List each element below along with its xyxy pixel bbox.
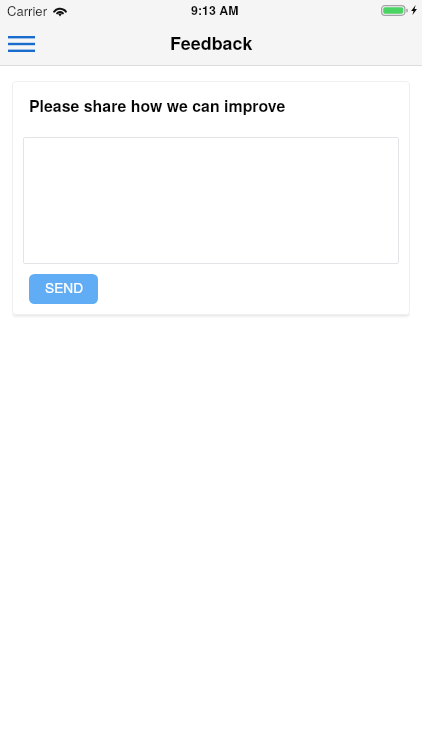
- staticText: 9:13 AM: [191, 1, 239, 19]
- button[interactable]: Menu: [0, 26, 43, 62]
- staticText: Carrier: [7, 1, 48, 20]
- staticText: Feedback: [170, 30, 253, 56]
- button[interactable]: Feedback text field: [23, 137, 399, 264]
- button[interactable]: SEND: [29, 274, 98, 304]
- staticText: SEND: [45, 277, 84, 297]
- staticText: Please share how we can improve: [29, 94, 286, 117]
